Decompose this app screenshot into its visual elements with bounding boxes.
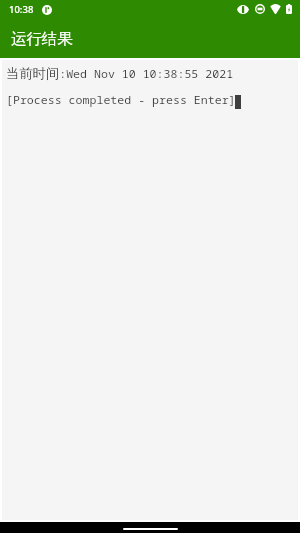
staticText: 10:38 (9, 3, 34, 16)
other: Wi-Fi (270, 4, 281, 14)
other: Location (237, 5, 249, 14)
button[interactable]: 运行结果 (0, 0, 300, 58)
other: Battery (286, 4, 292, 14)
staticText: 运行结果 (11, 29, 73, 48)
staticText: 当前时间:Wed Nov 10 10:38:55 2021 (6, 65, 234, 82)
other: Do not disturb (255, 4, 265, 14)
staticText: [Process completed - press Enter] (6, 92, 236, 108)
